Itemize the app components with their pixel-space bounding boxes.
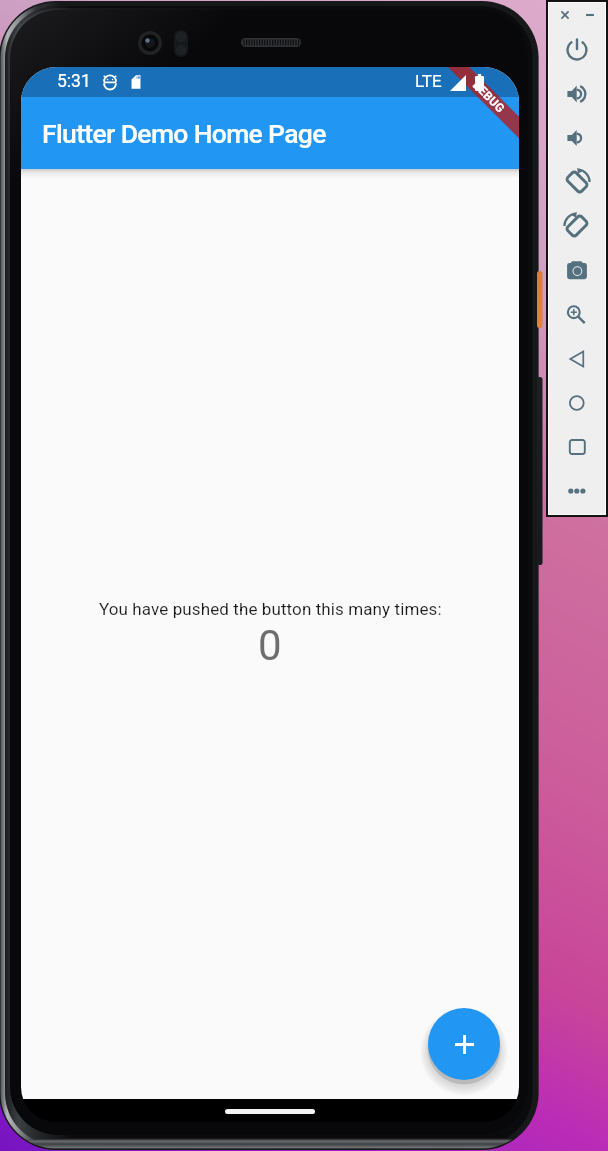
staticText: Flutter Demo Home Page — [42, 118, 326, 149]
button[interactable]: Zoom — [562, 300, 592, 330]
staticText: You have pushed the button this many tim… — [99, 599, 442, 619]
button[interactable]: Take screenshot — [562, 256, 592, 286]
button[interactable]: Volume up — [562, 79, 592, 109]
button[interactable]: Minimize — [580, 5, 600, 25]
button[interactable]: Volume down — [562, 123, 592, 153]
button[interactable]: Home — [562, 388, 592, 418]
button[interactable]: Increment — [428, 1008, 500, 1080]
button[interactable]: More — [562, 476, 592, 506]
button[interactable]: Rotate right — [562, 211, 592, 241]
button[interactable]: Back — [562, 344, 592, 374]
staticText: DEBUG — [470, 78, 508, 116]
button[interactable]: Close — [555, 5, 575, 25]
staticText: 0 — [258, 621, 282, 670]
button[interactable]: Overview — [562, 432, 592, 462]
staticText: LTE — [415, 71, 442, 91]
staticText: 5:31 — [57, 71, 91, 92]
button[interactable]: Rotate left — [562, 167, 592, 197]
button[interactable]: Power — [562, 35, 592, 65]
